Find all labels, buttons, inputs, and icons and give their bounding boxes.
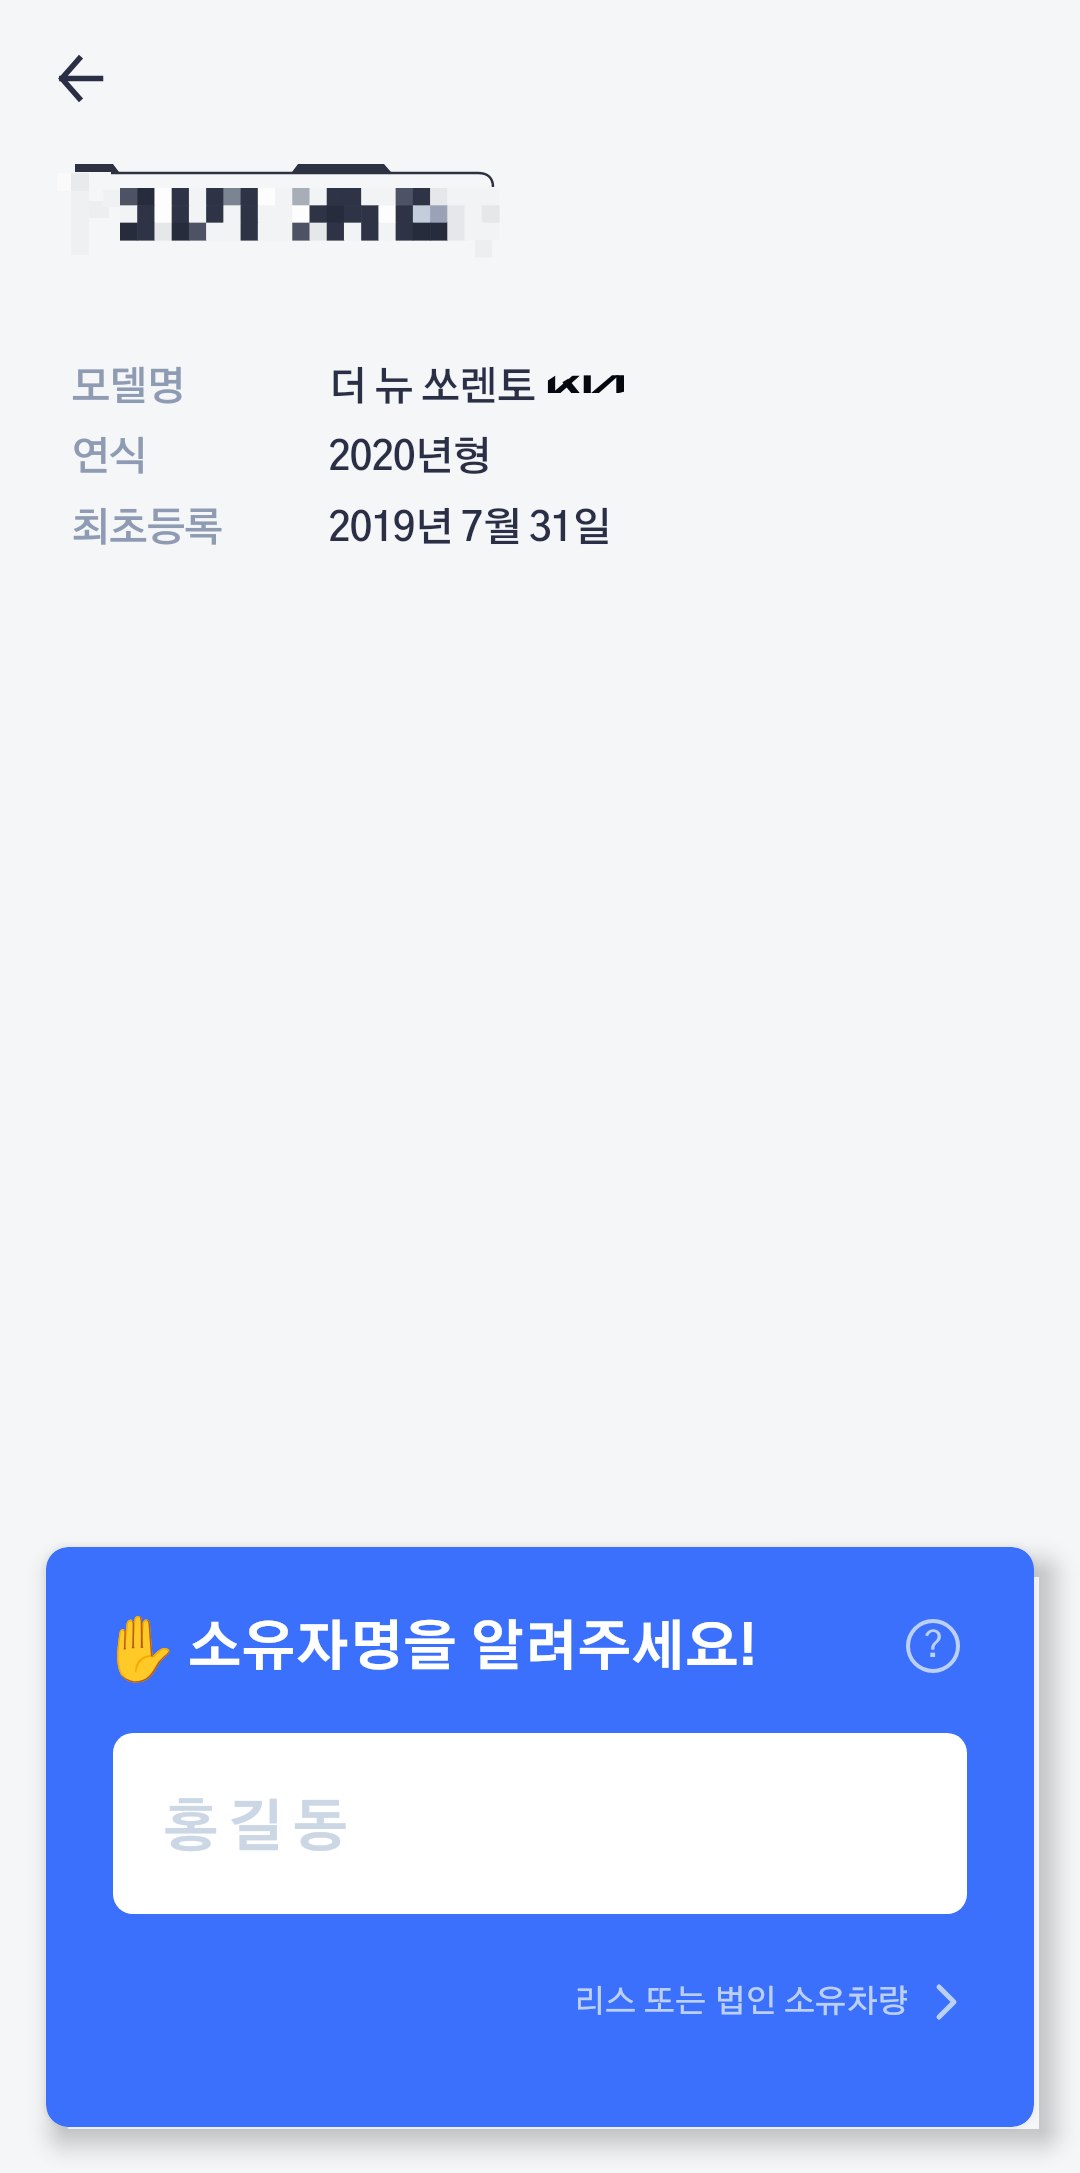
staticText: 2020년형: [328, 438, 491, 478]
staticText: 리스 또는 법인 소유차량: [574, 1986, 909, 2018]
staticText: 최초등록: [71, 509, 328, 549]
staticText: 모델명: [71, 368, 328, 408]
button[interactable]: 리스 또는 법인 소유차량: [574, 1969, 959, 2035]
staticText: 홍길동: [163, 1801, 358, 1857]
staticText: 소유자명을 알려주세요!: [188, 1622, 757, 1676]
staticText: 연식: [71, 438, 328, 478]
button[interactable]: Back: [59, 48, 119, 108]
staticText: 더 뉴 쏘렌토: [328, 368, 535, 408]
button[interactable]: 홍길동: [113, 1733, 967, 1914]
staticText: 2019년 7월 31일: [328, 509, 610, 549]
button[interactable]: Help: [895, 1608, 971, 1684]
staticText: ?: [923, 1627, 944, 1664]
staticText: ✋: [100, 1612, 180, 1687]
